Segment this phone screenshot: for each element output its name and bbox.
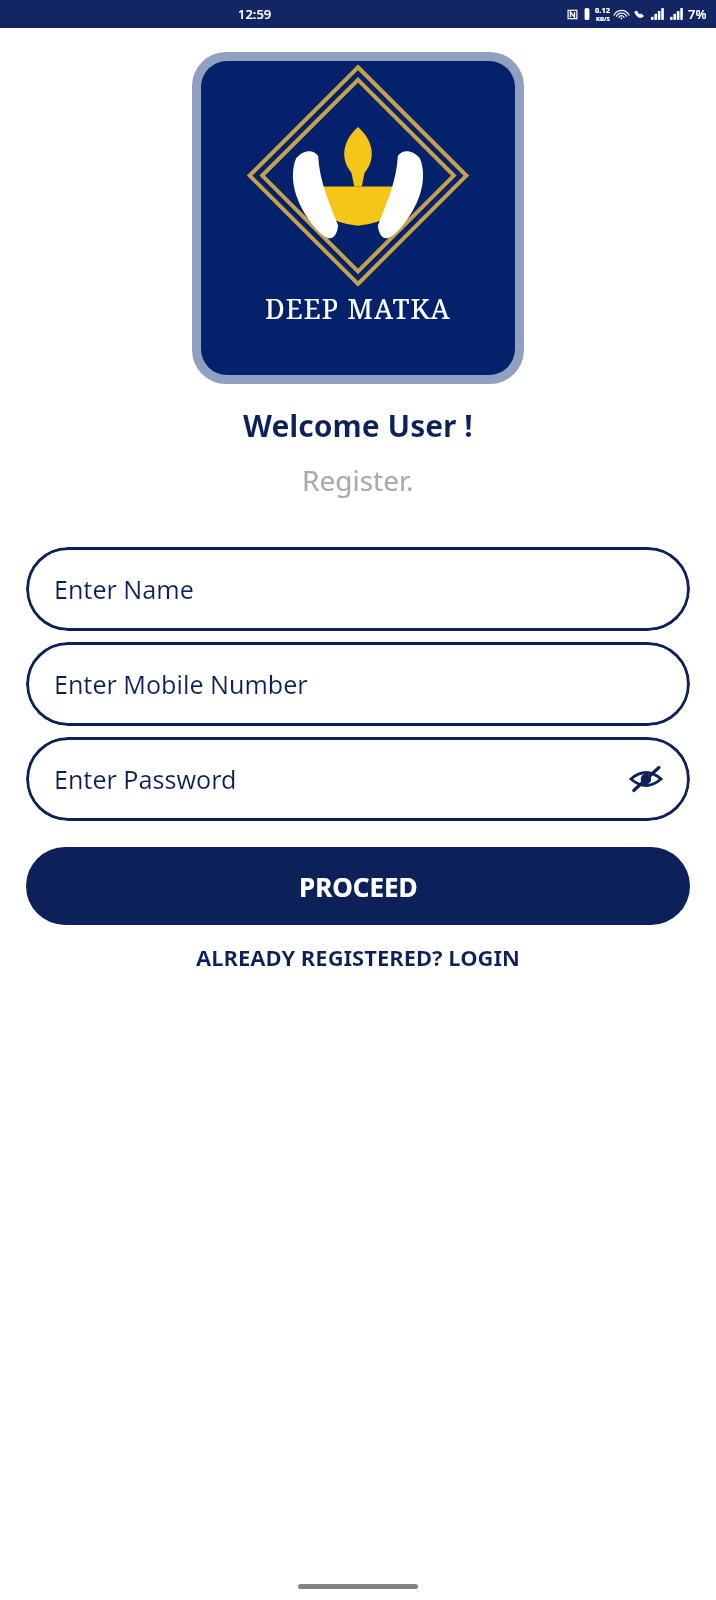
button[interactable]: Enter Name — [26, 547, 690, 631]
staticText: DEEP MATKA — [265, 290, 451, 327]
button[interactable]: ALREADY REGISTERED? LOGIN — [0, 938, 716, 976]
staticText: 12:59 — [238, 5, 272, 23]
staticText: Register. — [302, 461, 414, 499]
button[interactable]: Enter Mobile Number — [26, 642, 690, 726]
staticText: ALREADY REGISTERED? LOGIN — [196, 942, 520, 972]
button[interactable]: PROCEED — [26, 847, 690, 925]
staticText: Enter Password — [54, 762, 237, 796]
button[interactable]: Show password — [622, 755, 670, 803]
staticText: 7% — [688, 5, 707, 23]
staticText: Enter Name — [54, 572, 194, 606]
staticText: KB/S — [596, 15, 610, 23]
staticText: PROCEED — [299, 869, 418, 904]
button[interactable]: Enter Password — [26, 737, 690, 821]
staticText: Enter Mobile Number — [54, 667, 308, 701]
staticText: Welcome User ! — [243, 405, 473, 446]
staticText: 0.12 — [595, 5, 610, 15]
